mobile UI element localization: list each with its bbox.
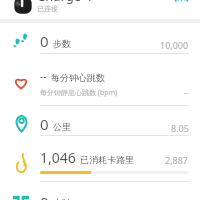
button[interactable]: 0: [0, 182, 200, 200]
staticText: 小时: [53, 197, 71, 200]
button[interactable]: 0: [0, 106, 200, 136]
staticText: 每分钟静息心跳数 (bpm): [40, 88, 118, 98]
staticText: --: [40, 69, 47, 83]
staticText: 8.05: [171, 122, 189, 134]
staticText: 已消耗卡路里: [80, 154, 134, 165]
staticText: 0: [40, 192, 49, 200]
staticText: 步数: [53, 38, 71, 49]
staticText: 1,046: [40, 148, 76, 167]
staticText: 公里: [53, 121, 71, 132]
button[interactable]: 0: [0, 23, 200, 54]
staticText: 每分钟心跳数: [51, 72, 105, 83]
staticText: 10,000: [160, 39, 189, 51]
staticText: 2,887: [165, 154, 189, 166]
staticText: 0: [40, 114, 49, 134]
button[interactable]: Charge 4: [0, 0, 200, 19]
staticText: Charge 4: [37, 0, 92, 5]
staticText: 0: [40, 31, 49, 51]
staticText: --: [184, 88, 189, 98]
button[interactable]: --: [0, 54, 200, 106]
button[interactable]: 1,046: [0, 136, 200, 182]
other: Sync status: [174, 0, 189, 5]
staticText: 已连接: [37, 4, 58, 13]
